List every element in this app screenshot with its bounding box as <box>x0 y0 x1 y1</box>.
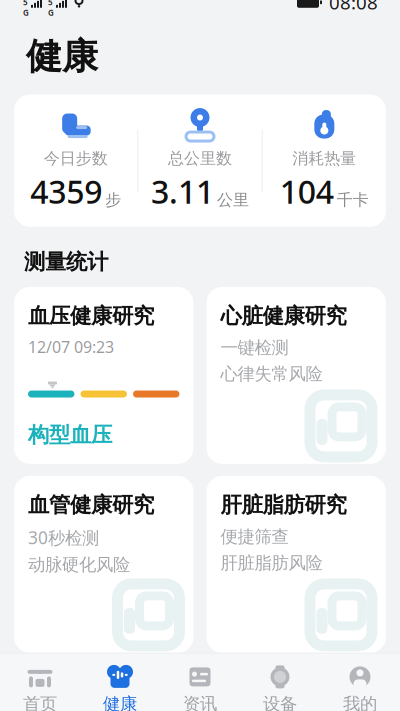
staticText: 设备 <box>263 693 297 711</box>
staticText: 一键检测 <box>220 337 288 358</box>
staticText: 我的 <box>343 693 377 711</box>
button[interactable]: 血管健康研究 <box>14 476 193 653</box>
staticText: 测量统计 <box>24 249 108 275</box>
staticText: 便捷筛查 <box>220 526 288 547</box>
staticText: 公里 <box>217 190 249 210</box>
button[interactable]: 健康 <box>80 662 160 711</box>
button[interactable]: 我的 <box>320 662 400 711</box>
staticText: 肝脏脂肪研究 <box>220 492 346 518</box>
staticText: 今日步数 <box>44 148 108 168</box>
staticText: 总公里数 <box>168 148 232 168</box>
button[interactable]: 心脏健康研究 <box>206 287 386 464</box>
staticText: 08:08 <box>329 0 378 15</box>
staticText: 健康 <box>26 34 98 78</box>
staticText: 首页 <box>23 693 57 711</box>
button[interactable]: 肝脏脂肪研究 <box>206 476 386 653</box>
staticText: 12/07 09:23 <box>28 336 114 357</box>
button[interactable]: 首页 <box>0 662 80 711</box>
staticText: 健康 <box>103 693 137 711</box>
staticText: 4359 <box>30 170 102 213</box>
staticText: 心律失常风险 <box>220 363 322 385</box>
button[interactable]: 资讯 <box>160 662 240 711</box>
staticText: 104 <box>280 170 334 213</box>
staticText: 血压健康研究 <box>28 303 154 329</box>
button[interactable]: 设备 <box>240 662 320 711</box>
staticText: 心脏健康研究 <box>220 303 346 329</box>
button[interactable]: 血压健康研究 <box>14 287 193 464</box>
staticText: 30秒检测 <box>28 526 99 549</box>
staticText: 千卡 <box>337 190 369 210</box>
staticText: 步 <box>105 190 121 210</box>
staticText: 5G <box>48 0 54 18</box>
staticText: 消耗热量 <box>292 148 356 168</box>
staticText: 5G <box>23 0 29 18</box>
staticText: 3.11 <box>151 170 214 213</box>
staticText: 血管健康研究 <box>28 492 154 518</box>
staticText: 资讯 <box>183 693 217 711</box>
staticText: 构型血压 <box>28 422 112 448</box>
staticText: 动脉硬化风险 <box>28 554 130 575</box>
staticText: 肝脏脂肪风险 <box>220 552 322 574</box>
